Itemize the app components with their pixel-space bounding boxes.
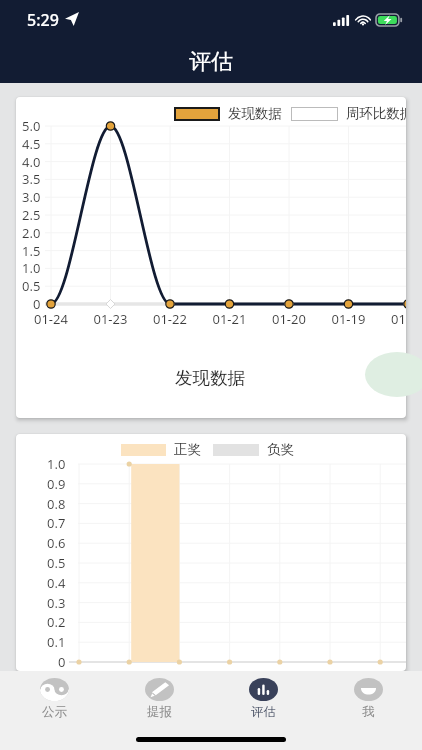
staticText: 负奖 — [267, 441, 294, 458]
button[interactable]: 评估 — [213, 671, 313, 720]
button[interactable]: 发现数据 — [16, 97, 406, 418]
staticText: 发现数据 — [175, 367, 245, 389]
other: 提报 — [145, 678, 174, 701]
staticText: 提报 — [147, 704, 172, 720]
staticText: 评估 — [189, 48, 233, 76]
other: 公示 — [40, 678, 69, 701]
staticText: 5:29 — [27, 9, 59, 31]
staticText: 发现数据 — [228, 105, 282, 122]
staticText: 正奖 — [174, 441, 201, 458]
staticText: 我 — [362, 704, 375, 720]
other: 我 — [354, 678, 383, 701]
staticText: 评估 — [251, 704, 276, 720]
button[interactable]: 我 — [318, 671, 418, 720]
staticText: 周环比数据 — [346, 105, 406, 122]
other: 评估 — [249, 678, 278, 701]
button[interactable]: 公示 — [4, 671, 104, 720]
staticText: 公示 — [42, 704, 67, 720]
button[interactable]: 提报 — [109, 671, 209, 720]
